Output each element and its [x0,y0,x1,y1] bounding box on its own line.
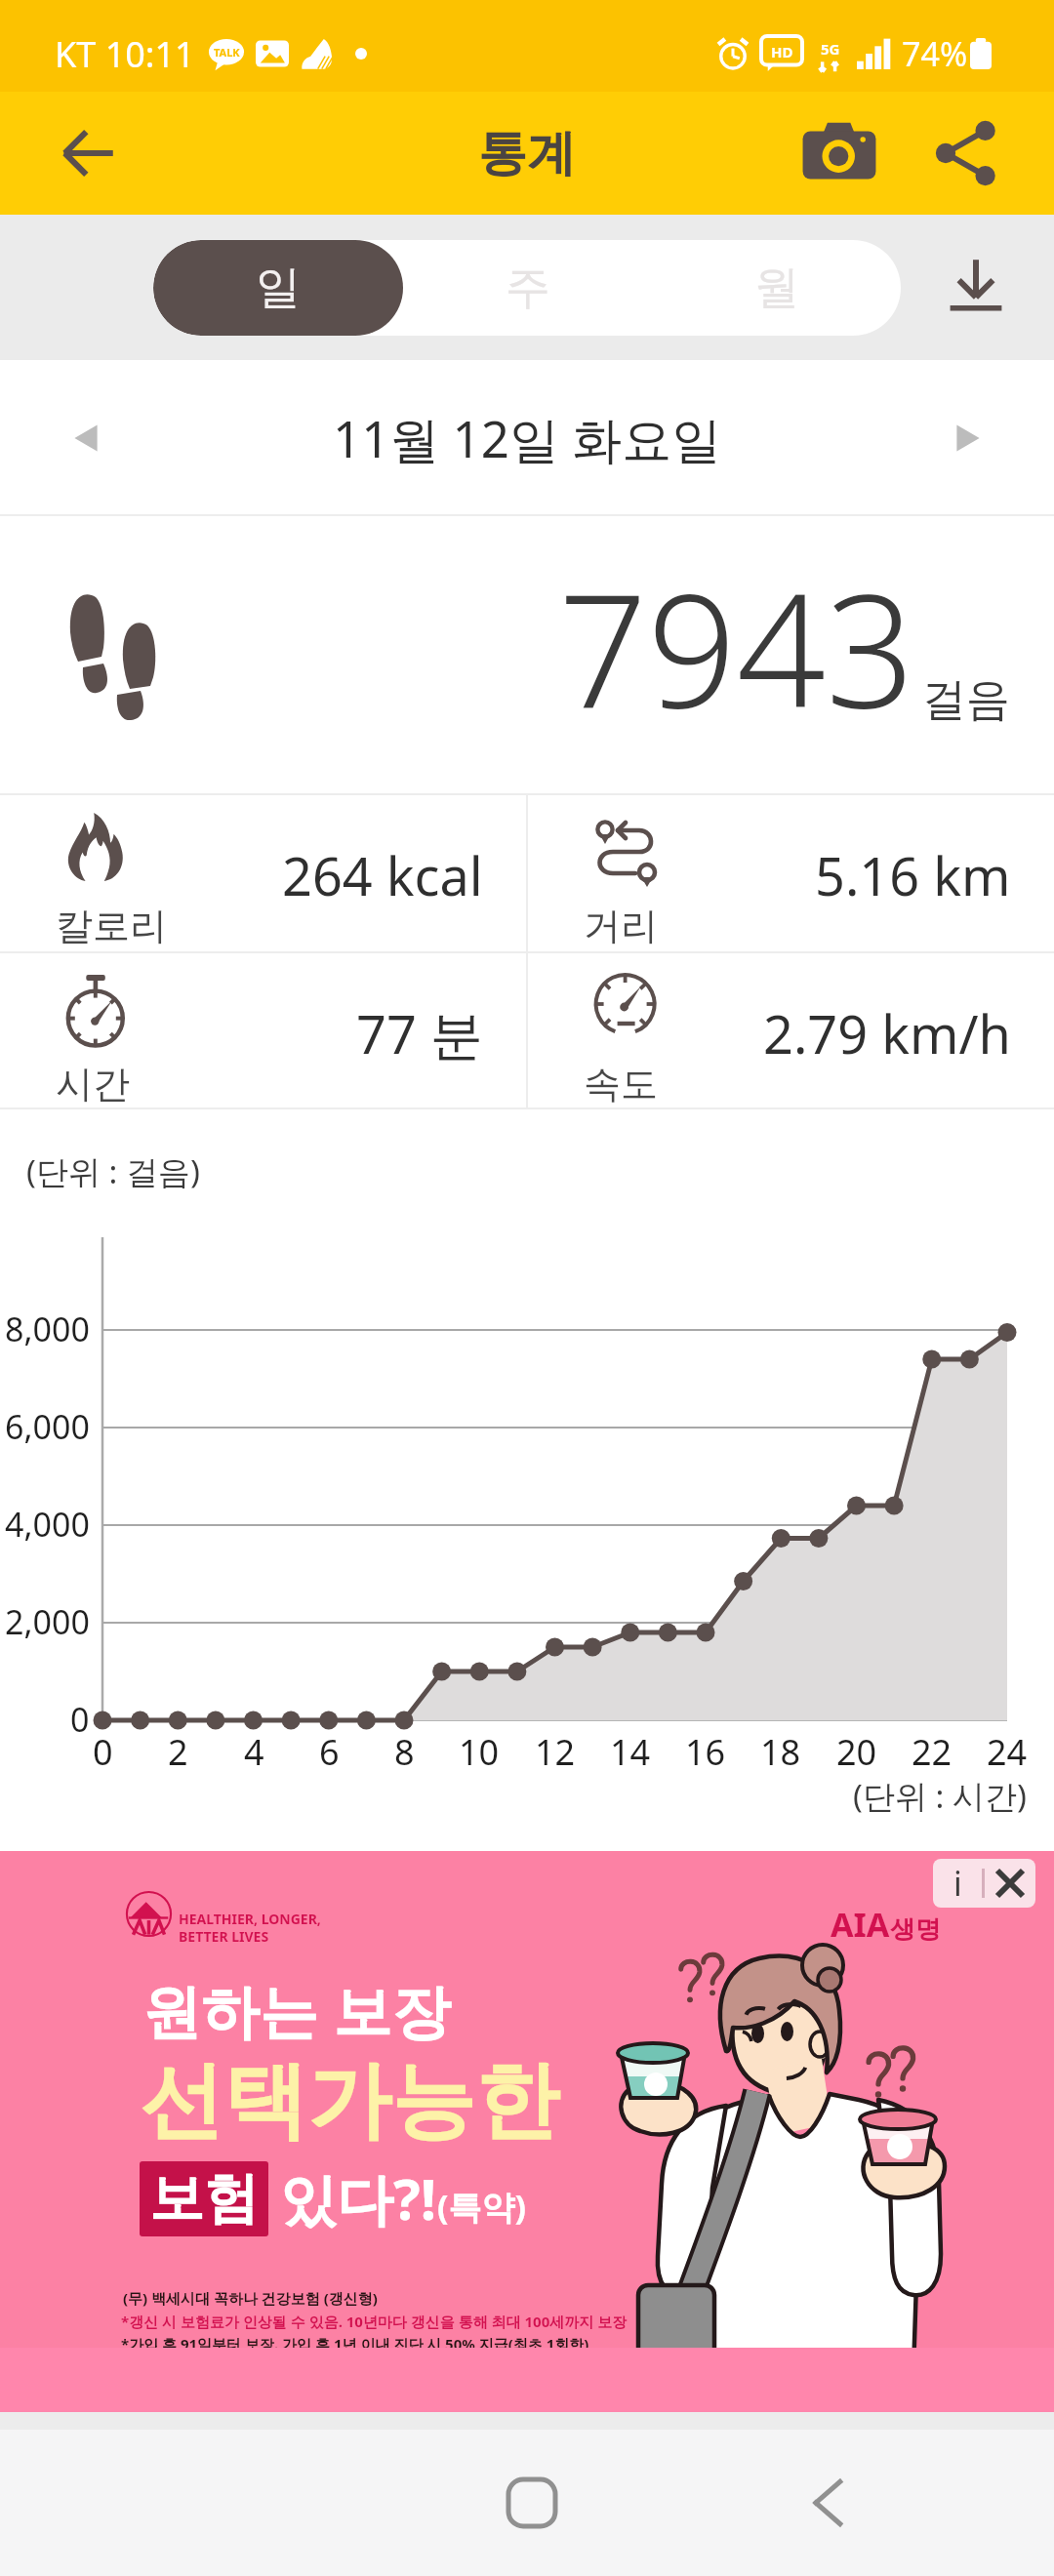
staticText: 77 분 [356,997,483,1069]
staticText: 걸음 [922,672,1010,728]
staticText: 14 [610,1728,651,1776]
staticText: 생명 [890,1913,941,1946]
staticText: 24 [987,1728,1028,1776]
staticText: BETTER LIVES [179,1927,269,1946]
staticText: (무) 백세시대 꼭하나 건강보험 (갱신형) [123,2288,378,2308]
staticText: 8,000 [5,1307,90,1351]
staticText: 5G [821,39,840,59]
staticText: i [953,1861,962,1906]
button[interactable]: 칼로리 [0,795,526,951]
staticText: 원하는 보장 [142,1970,451,2050]
staticText: HEALTHIER, LONGER, [179,1910,321,1928]
staticText: *갱신 시 보험료가 인상될 수 있음. 10년마다 갱신을 통해 최대 100… [121,2312,628,2331]
button[interactable]: Ad info [933,1859,982,1908]
staticText: (단위 : 걸음) [26,1149,200,1193]
staticText: 보험 [149,2164,259,2234]
staticText: 4,000 [5,1502,90,1547]
staticText: (특약) [437,2184,527,2229]
button[interactable]: Share [914,101,1018,205]
staticText: KT 10:11 [55,30,195,78]
button[interactable]: Back [39,104,137,202]
staticText: 18 [760,1728,801,1776]
staticText: 거리 [584,903,658,949]
staticText: 4 [244,1728,264,1776]
button[interactable]: Previous day [47,397,129,479]
staticText: 6 [319,1728,340,1776]
staticText: 22 [912,1728,953,1776]
staticText: 통계 [478,123,576,184]
staticText: TALK [214,45,240,60]
staticText: 8 [394,1728,415,1776]
button[interactable]: 속도 [528,953,1054,1107]
staticText: 0 [70,1697,90,1742]
staticText: 74% [902,31,968,76]
staticText: 있다?! [280,2159,437,2236]
staticText: 속도 [584,1061,658,1107]
staticText: 선택가능한 [140,2048,559,2153]
staticText: 주 [506,260,550,316]
staticText: 0 [93,1728,113,1776]
staticText: HD [771,42,793,61]
staticText: 20 [836,1728,877,1776]
button[interactable]: Back [786,2459,873,2547]
staticText: 일 [256,260,301,316]
button[interactable]: AIA insurance advertisement [0,1851,1054,2348]
staticText: 10 [459,1728,500,1776]
staticText: 7943 [558,541,915,753]
button[interactable]: 거리 [528,795,1054,951]
staticText: 칼로리 [56,903,167,949]
button[interactable]: 시간 [0,953,526,1107]
staticText: AIA [831,1902,890,1947]
button[interactable]: 주 [403,240,652,336]
staticText: 2,000 [5,1599,90,1644]
button[interactable]: Close ad [985,1859,1035,1908]
staticText: 2.79 km/h [763,997,1011,1069]
button[interactable]: Camera [786,100,893,207]
staticText: 월 [754,260,799,316]
button[interactable]: Next day [925,397,1007,479]
button[interactable]: Home [488,2459,576,2547]
button[interactable]: 일 [153,240,403,336]
staticText: *가입 후 91일부터 보장. 가입 후 1년 이내 진단 시 50% 지급(최… [121,2334,589,2354]
button[interactable]: Download [929,241,1023,335]
staticText: 시간 [56,1061,130,1107]
staticText: (단위 : 시간) [853,1774,1027,1818]
staticText: 2 [168,1728,188,1776]
staticText: 12 [535,1728,576,1776]
button[interactable]: 월 [652,240,901,336]
staticText: 6,000 [5,1404,90,1449]
staticText: 11월 12일 화요일 [333,404,722,472]
staticText: 264 kcal [282,839,483,911]
staticText: 16 [685,1728,726,1776]
staticText: 5.16 km [815,839,1011,911]
